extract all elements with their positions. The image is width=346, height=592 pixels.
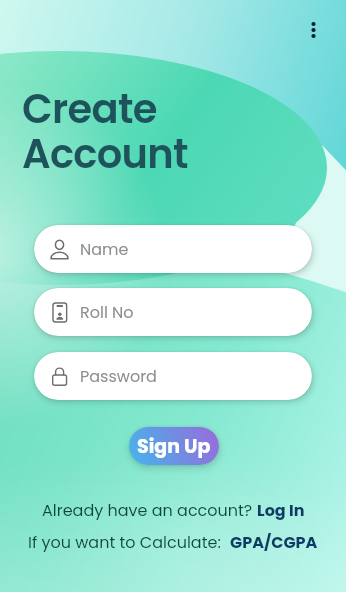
staticText: If you want to Calculate: [28,531,230,553]
staticText: Roll No [80,301,134,323]
button[interactable]: Sign Up [129,427,219,465]
staticText: Sign Up [137,433,211,460]
staticText: Create Account [22,81,188,182]
button[interactable]: Log In [257,499,305,521]
button[interactable]: Name [34,225,312,273]
staticText: GPA/CGPA [230,531,318,553]
staticText: Log In [257,499,305,521]
staticText: Already have an account? [42,499,257,521]
button[interactable]: GPA/CGPA [230,531,318,553]
button[interactable]: Roll No [34,288,312,336]
staticText: Password [80,365,157,387]
button[interactable]: More options [298,14,329,45]
button[interactable]: Password [34,352,312,400]
staticText: Name [80,238,129,260]
